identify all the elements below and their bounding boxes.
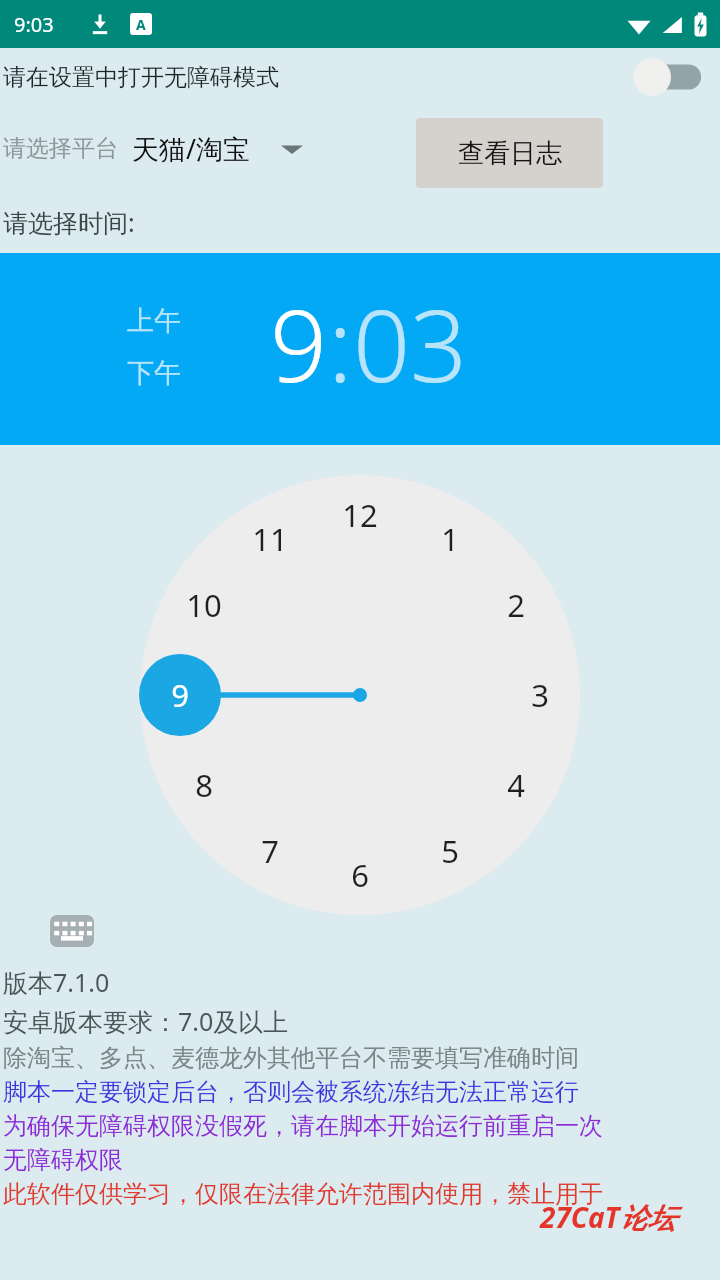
staticText: 此软件仅供学习，仅限在法律允许范围内使用，禁止用于 — [3, 1179, 603, 1209]
staticText: 为确保无障碍权限没假死，请在脚本开始运行前重启一次 — [3, 1111, 603, 1141]
staticText: 5 — [441, 830, 459, 872]
staticText: 1 — [441, 518, 459, 560]
staticText: 12 — [342, 494, 378, 536]
button[interactable]: 上午 — [127, 304, 181, 338]
button[interactable]: 03 — [353, 275, 468, 411]
button[interactable]: Switch to text input — [50, 915, 94, 947]
button[interactable]: 9 — [270, 275, 328, 411]
staticText: 9 — [171, 674, 189, 716]
staticText: 7 — [261, 830, 279, 872]
staticText: 请选择时间: — [3, 205, 135, 239]
button[interactable]: Enable accessibility mode — [632, 56, 704, 98]
staticText: 2 — [507, 584, 525, 626]
staticText: 脚本一定要锁定后台，否则会被系统冻结无法正常运行 — [3, 1077, 579, 1107]
staticText: 天猫/淘宝 — [132, 130, 251, 167]
staticText: 安卓版本要求：7.0及以上 — [3, 1004, 289, 1038]
staticText: 6 — [351, 854, 369, 896]
staticText: : — [328, 275, 353, 411]
staticText: 27CaT论坛 — [540, 1198, 676, 1236]
staticText: 版本7.1.0 — [3, 965, 110, 999]
staticText: 9:03 — [14, 11, 54, 38]
staticText: 9 — [270, 275, 328, 411]
staticText: 请在设置中打开无障碍模式 — [3, 63, 279, 92]
staticText: 请选择平台 — [3, 134, 118, 163]
staticText: 03 — [353, 275, 468, 411]
staticText: 无障碍权限 — [3, 1145, 123, 1175]
staticText: 下午 — [127, 356, 181, 390]
button[interactable]: Hour picker clock — [0, 445, 720, 915]
staticText: 11 — [252, 518, 288, 560]
staticText: 4 — [507, 764, 525, 806]
staticText: 查看日志 — [458, 137, 562, 170]
button[interactable]: 下午 — [127, 356, 181, 390]
staticText: 10 — [186, 584, 222, 626]
staticText: 8 — [195, 764, 213, 806]
button[interactable]: 请选择平台 — [3, 130, 303, 167]
button[interactable]: 查看日志 — [416, 118, 603, 188]
staticText: 3 — [531, 674, 549, 716]
staticText: A — [136, 15, 146, 34]
staticText: 除淘宝、多点、麦德龙外其他平台不需要填写准确时间 — [3, 1043, 579, 1073]
staticText: 上午 — [127, 304, 181, 338]
